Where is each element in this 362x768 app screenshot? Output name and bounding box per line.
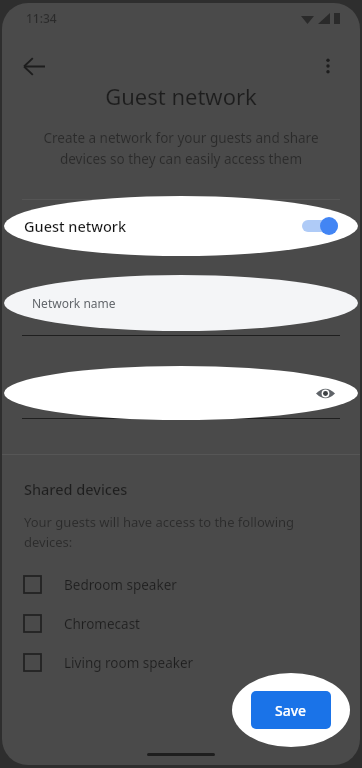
staticText: Create a network for your guests and sha… [24, 129, 338, 168]
button[interactable]: Guest network [2, 203, 360, 249]
button[interactable]: Save [251, 691, 331, 729]
button[interactable] [2, 200, 360, 255]
staticText: Guest network [24, 216, 127, 236]
button[interactable]: More options [306, 44, 350, 88]
button[interactable]: Show password [2, 372, 360, 414]
button[interactable]: Living room speaker [2, 643, 360, 682]
button[interactable]: Chromecast [2, 604, 360, 643]
staticText: Chromecast [64, 615, 140, 633]
button[interactable]: Bedroom speaker [2, 565, 360, 604]
staticText: Guest network [2, 81, 360, 111]
staticText: Network name [32, 295, 116, 311]
staticText: Bedroom speaker [64, 576, 177, 594]
staticText: Shared devices [24, 479, 128, 499]
staticText: Living room speaker [64, 654, 194, 672]
button[interactable]: Show password [312, 380, 338, 406]
staticText: Save [275, 701, 307, 720]
button[interactable]: Network name [2, 281, 360, 325]
button[interactable]: Back [12, 44, 56, 88]
staticText: 11:34 [26, 10, 57, 26]
staticText: Your guests will have access to the foll… [24, 513, 295, 551]
